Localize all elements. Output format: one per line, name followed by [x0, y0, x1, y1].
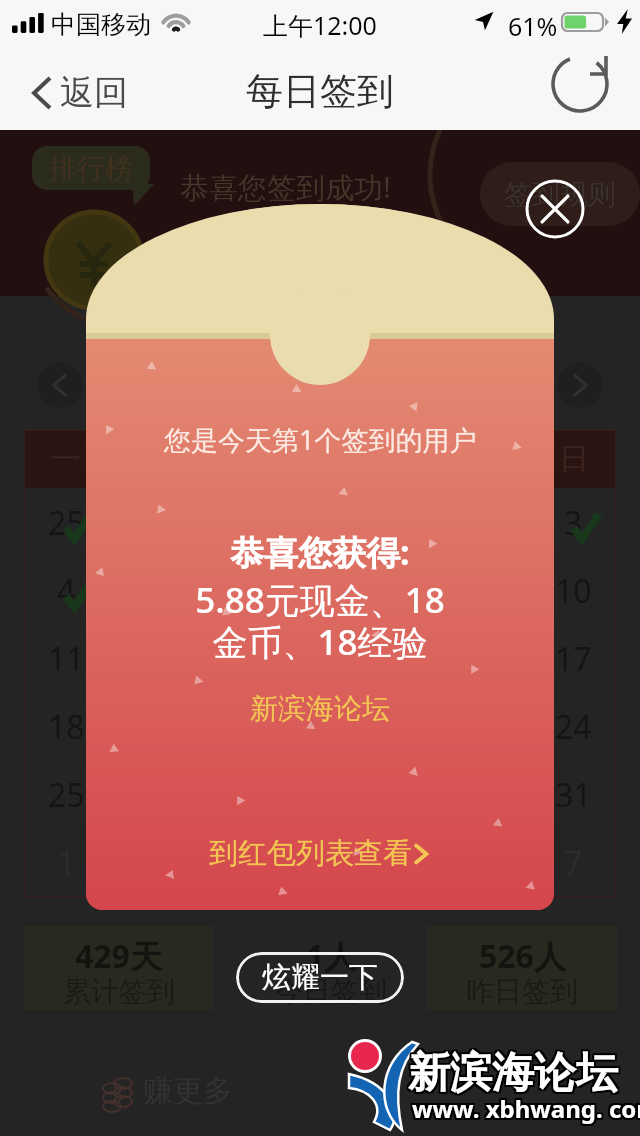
staticText: 赚更多 [143, 1072, 233, 1110]
button[interactable]: 赚更多 [96, 1068, 237, 1114]
staticText: 返回 [60, 71, 128, 114]
staticText: 新滨海论坛 [250, 691, 390, 726]
staticText: 15 [385, 637, 422, 681]
staticText: 429天 [75, 934, 162, 978]
staticText: 五 [389, 440, 419, 478]
staticText: 四 [304, 440, 334, 478]
button[interactable]: Close [526, 180, 584, 238]
staticText: 5.88元现金、18 金币、18经验 [195, 576, 445, 666]
staticText: 新滨海论坛 [410, 1049, 620, 1102]
button[interactable]: 到红包列表查看 [209, 835, 432, 872]
staticText: 新滨海论坛 [410, 1045, 620, 1098]
button[interactable]: Next month [557, 362, 603, 408]
staticText: www. xbhwang. com [412, 1094, 640, 1127]
staticText: 31 [555, 773, 592, 817]
staticText: www. xbhwang. com [412, 1090, 640, 1123]
staticText: 27 [216, 773, 253, 817]
button[interactable]: 排行榜 [32, 146, 150, 190]
staticText: 3 [564, 501, 583, 545]
staticText: 6 [225, 569, 244, 613]
staticText: www. xbhwang. com [414, 1094, 640, 1127]
staticText: 排行榜 [49, 151, 133, 186]
staticText: www. xbhwang. com [410, 1094, 640, 1127]
staticText: 13 [216, 637, 253, 681]
staticText: www. xbhwang. com [412, 1092, 640, 1125]
staticText: 14 [300, 637, 337, 681]
staticText: 526人 [479, 934, 566, 978]
staticText: www. xbhwang. com [410, 1090, 640, 1123]
staticText: 10 [555, 569, 592, 613]
staticText: 新滨海论坛 [408, 1049, 618, 1102]
button[interactable]: 429天 [24, 926, 213, 1010]
staticText: 新滨海论坛 [408, 1045, 618, 1098]
staticText: 21 [300, 705, 337, 749]
button[interactable]: Previous month [37, 362, 83, 408]
staticText: 26 [132, 501, 169, 545]
staticText: 25 [48, 773, 85, 817]
staticText: 28 [300, 501, 337, 545]
staticText: 炫耀一下 [262, 959, 378, 996]
staticText: 恭喜您获得: [230, 529, 410, 575]
button[interactable]: Refresh [548, 54, 612, 118]
staticText: 上午12:00 [263, 8, 377, 42]
staticText: 累计签到 [63, 974, 175, 1009]
button[interactable]: 1人 [236, 926, 426, 1010]
staticText: 昨日签到 [466, 974, 578, 1009]
staticText: 29 [385, 773, 422, 817]
staticText: 恭喜您签到成功! [180, 167, 391, 207]
staticText: 20 [216, 705, 253, 749]
staticText: 17 [555, 637, 592, 681]
staticText: 27 [216, 501, 253, 545]
staticText: 中国移动 [51, 9, 151, 40]
staticText: 3 [225, 841, 244, 885]
staticText: 25 [48, 501, 85, 545]
staticText: 11 [48, 637, 85, 681]
staticText: 二 [135, 440, 165, 478]
staticText: 日 [559, 440, 589, 478]
staticText: 8 [394, 569, 413, 613]
staticText: 新滨海论坛 [410, 1047, 620, 1100]
staticText: 三 [219, 440, 249, 478]
staticText: 新滨海论坛 [406, 1047, 616, 1100]
staticText: 六 [474, 440, 504, 478]
staticText: 每日签到 [246, 68, 394, 115]
staticText: 16 [470, 637, 507, 681]
button[interactable]: 返回 [0, 63, 142, 122]
staticText: 24 [555, 705, 592, 749]
staticText: 61% [508, 9, 558, 43]
staticText: 4 [309, 841, 328, 885]
staticText: 1人 [306, 934, 357, 978]
staticText: 一 [51, 440, 81, 478]
staticText: www. xbhwang. com [414, 1090, 640, 1123]
staticText: 新滨海论坛 [408, 1047, 618, 1100]
staticText: 到红包列表查看 [209, 835, 412, 872]
staticText: www. xbhwang. com [414, 1092, 640, 1125]
staticText: 今日签到 [275, 974, 387, 1009]
staticText: www. xbhwang. com [410, 1092, 640, 1125]
button[interactable]: 签到规则 [480, 162, 640, 226]
staticText: 新滨海论坛 [406, 1049, 616, 1102]
button[interactable]: 炫耀一下 [236, 952, 404, 1003]
staticText: 7 [309, 569, 328, 613]
staticText: 签到规则 [504, 177, 616, 212]
button[interactable]: 526人 [427, 926, 617, 1010]
staticText: 4 [57, 569, 76, 613]
staticText: 22 [385, 705, 422, 749]
staticText: 新滨海论坛 [406, 1045, 616, 1098]
staticText: 18 [48, 705, 85, 749]
staticText: 5 [394, 841, 413, 885]
staticText: 29 [385, 501, 422, 545]
